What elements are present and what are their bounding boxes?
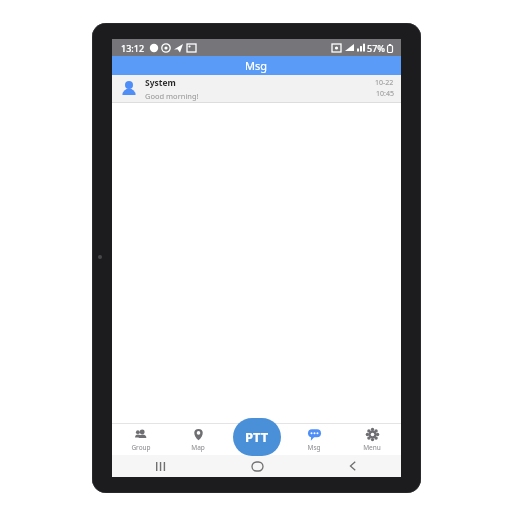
staticText: PTT xyxy=(245,428,269,446)
staticText: Msg xyxy=(307,443,321,452)
staticText: 13:12 xyxy=(121,42,145,54)
staticText: 10:45 xyxy=(376,89,394,99)
staticText: 10-22 xyxy=(375,78,394,88)
staticText: System xyxy=(145,77,176,89)
button[interactable]: Map xyxy=(169,424,227,455)
staticText: 57% xyxy=(367,42,385,54)
button[interactable]: Group xyxy=(112,424,169,455)
button[interactable]: Home xyxy=(246,455,268,477)
button[interactable]: Recent apps xyxy=(150,455,172,477)
button[interactable]: PTT xyxy=(233,418,281,456)
staticText: Msg xyxy=(245,58,268,73)
button[interactable]: Back xyxy=(342,455,364,477)
staticText: Good morning! xyxy=(145,91,199,101)
button[interactable]: Menu xyxy=(343,424,401,455)
staticText: Map xyxy=(191,443,205,452)
button[interactable]: System xyxy=(112,75,401,102)
button[interactable]: Msg xyxy=(285,424,343,455)
staticText: Menu xyxy=(363,443,381,452)
staticText: Group xyxy=(131,443,151,452)
